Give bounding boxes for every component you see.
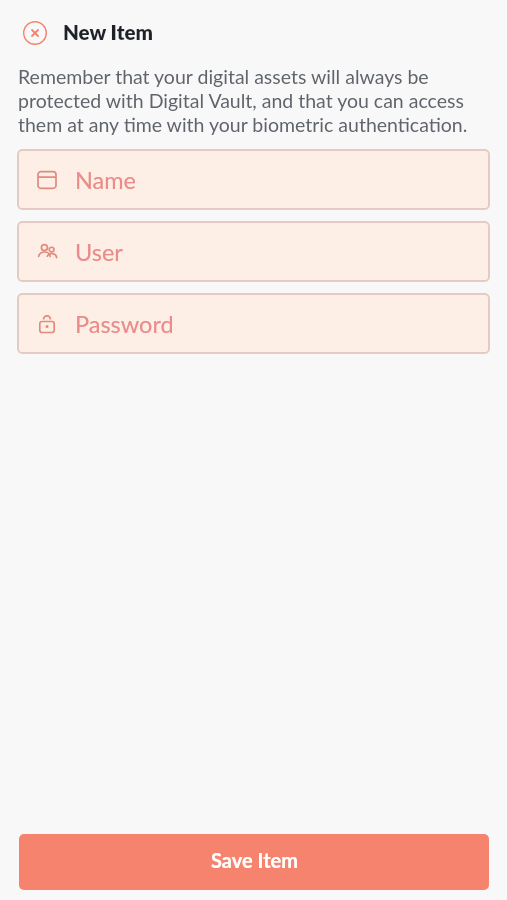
staticText: User [75,238,123,266]
staticText: Password [75,310,174,338]
staticText: Remember that your digital assets will a… [18,64,468,136]
button[interactable]: Close [18,15,52,49]
staticText: New Item [63,20,153,45]
button[interactable]: Password [17,293,490,354]
button[interactable]: User [17,221,490,282]
staticText: Name [75,166,137,194]
button[interactable]: Save Item [19,834,489,890]
button[interactable]: Name [17,149,490,210]
staticText: Save Item [211,848,298,872]
